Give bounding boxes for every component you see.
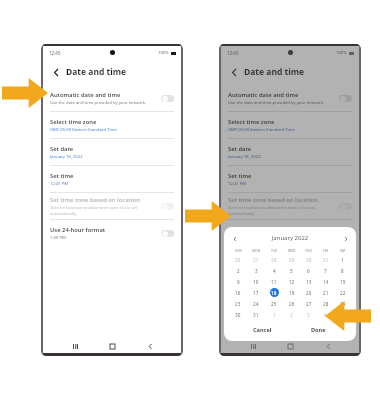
button[interactable]: 27 — [247, 254, 265, 265]
button[interactable]: 2 — [229, 265, 247, 276]
button[interactable]: Home — [106, 340, 118, 352]
staticText: Set time zone based on location — [50, 196, 140, 204]
button[interactable]: Recents — [247, 340, 259, 352]
staticText: Select time zone — [228, 118, 275, 126]
button[interactable]: 31 — [247, 309, 265, 320]
staticText: Turn on location to allow time zone to b… — [228, 205, 339, 217]
staticText: 21 — [323, 290, 329, 296]
staticText: 3 — [255, 268, 258, 274]
button[interactable]: 8 — [334, 265, 351, 276]
button[interactable]: 15 — [334, 276, 351, 287]
button[interactable]: 18 — [265, 287, 283, 298]
button[interactable]: 29 — [283, 254, 300, 265]
button[interactable]: Set date — [221, 139, 359, 165]
button[interactable]: 26 — [229, 254, 247, 265]
button[interactable]: Home — [284, 340, 296, 352]
button[interactable]: 4 — [265, 265, 283, 276]
button[interactable]: 14 — [317, 276, 334, 287]
staticText: Set date — [228, 145, 252, 153]
button[interactable]: 27 — [300, 298, 317, 309]
button[interactable]: Previous month — [230, 234, 239, 243]
button[interactable]: 23 — [229, 298, 247, 309]
staticText: 1:00 PM — [50, 235, 66, 241]
button[interactable]: 25 — [265, 298, 283, 309]
button[interactable]: Back — [227, 65, 241, 79]
staticText: Select time zone — [50, 118, 97, 126]
staticText: 1:00 PM — [228, 235, 244, 241]
button[interactable]: 19 — [283, 287, 300, 298]
staticText: 28 — [323, 301, 329, 307]
button[interactable]: Back — [49, 65, 63, 79]
button[interactable]: 5 — [283, 265, 300, 276]
staticText: TUE — [271, 248, 278, 253]
button[interactable]: Back — [322, 340, 334, 352]
staticText: 4 — [273, 268, 276, 274]
button[interactable]: 7 — [317, 265, 334, 276]
staticText: Set time zone based on location — [228, 196, 318, 204]
button[interactable]: 20 — [300, 287, 317, 298]
button[interactable]: Set time — [221, 166, 359, 192]
button[interactable]: 17 — [247, 287, 265, 298]
button[interactable]: 30 — [229, 309, 247, 320]
staticText: Date and time — [244, 66, 305, 78]
staticText: 26 — [235, 257, 241, 263]
button[interactable]: 24 — [247, 298, 265, 309]
button[interactable]: 31 — [317, 254, 334, 265]
button[interactable]: 9 — [229, 276, 247, 287]
staticText: 24 — [253, 301, 259, 307]
staticText: 18 — [271, 290, 277, 296]
staticText: 17 — [253, 290, 259, 296]
button[interactable]: 11 — [265, 276, 283, 287]
button[interactable]: 2 — [283, 309, 300, 320]
button[interactable]: 6 — [300, 265, 317, 276]
button[interactable]: 28 — [265, 254, 283, 265]
button[interactable]: 1 — [334, 254, 351, 265]
button[interactable]: Use 24-hour format — [43, 220, 181, 246]
button[interactable]: Next month — [341, 234, 350, 243]
staticText: Use the date and time provided by your n… — [228, 100, 325, 106]
button[interactable]: 12 — [283, 276, 300, 287]
staticText: Use the date and time provided by your n… — [50, 100, 147, 106]
staticText: Use 24-hour format — [50, 226, 106, 234]
button[interactable]: Set time — [43, 166, 181, 192]
button[interactable]: 30 — [300, 254, 317, 265]
button[interactable]: 21 — [317, 287, 334, 298]
button[interactable]: Recents — [69, 340, 81, 352]
button[interactable]: Automatic date and time — [221, 85, 359, 111]
staticText: 28 — [271, 257, 277, 263]
staticText: 31 — [253, 312, 259, 318]
staticText: 2 — [237, 268, 240, 274]
button[interactable]: Set time zone based on location — [221, 193, 359, 219]
staticText: Turn on location to allow time zone to b… — [50, 205, 161, 217]
button[interactable]: 3 — [247, 265, 265, 276]
button[interactable]: 13 — [300, 276, 317, 287]
button[interactable]: 3 — [300, 309, 317, 320]
staticText: 7 — [324, 268, 327, 274]
staticText: 20 — [306, 290, 312, 296]
button[interactable]: Use 24-hour format — [221, 220, 359, 246]
staticText: 12 — [289, 279, 295, 285]
button[interactable]: 28 — [317, 298, 334, 309]
staticText: 3 — [307, 312, 310, 318]
button[interactable]: Select time zone — [43, 112, 181, 138]
button[interactable]: Back — [144, 340, 156, 352]
button[interactable]: Set date — [43, 139, 181, 165]
button[interactable]: 10 — [247, 276, 265, 287]
staticText: 8 — [341, 268, 344, 274]
staticText: 27 — [306, 301, 312, 307]
button[interactable]: 22 — [334, 287, 351, 298]
button[interactable]: Automatic date and time — [43, 85, 181, 111]
button[interactable]: 5 — [334, 309, 351, 320]
staticText: 10 — [253, 279, 259, 285]
button[interactable]: Cancel — [234, 323, 290, 336]
staticText: 100% — [158, 50, 169, 56]
button[interactable]: 16 — [229, 287, 247, 298]
button[interactable]: 26 — [283, 298, 300, 309]
button[interactable]: Done — [290, 323, 346, 336]
button[interactable]: 29 — [334, 298, 351, 309]
button[interactable]: Set time zone based on location — [43, 193, 181, 219]
button[interactable]: 1 — [265, 309, 283, 320]
staticText: 12:41 PM — [228, 181, 247, 187]
button[interactable]: Select time zone — [221, 112, 359, 138]
button[interactable]: 4 — [317, 309, 334, 320]
